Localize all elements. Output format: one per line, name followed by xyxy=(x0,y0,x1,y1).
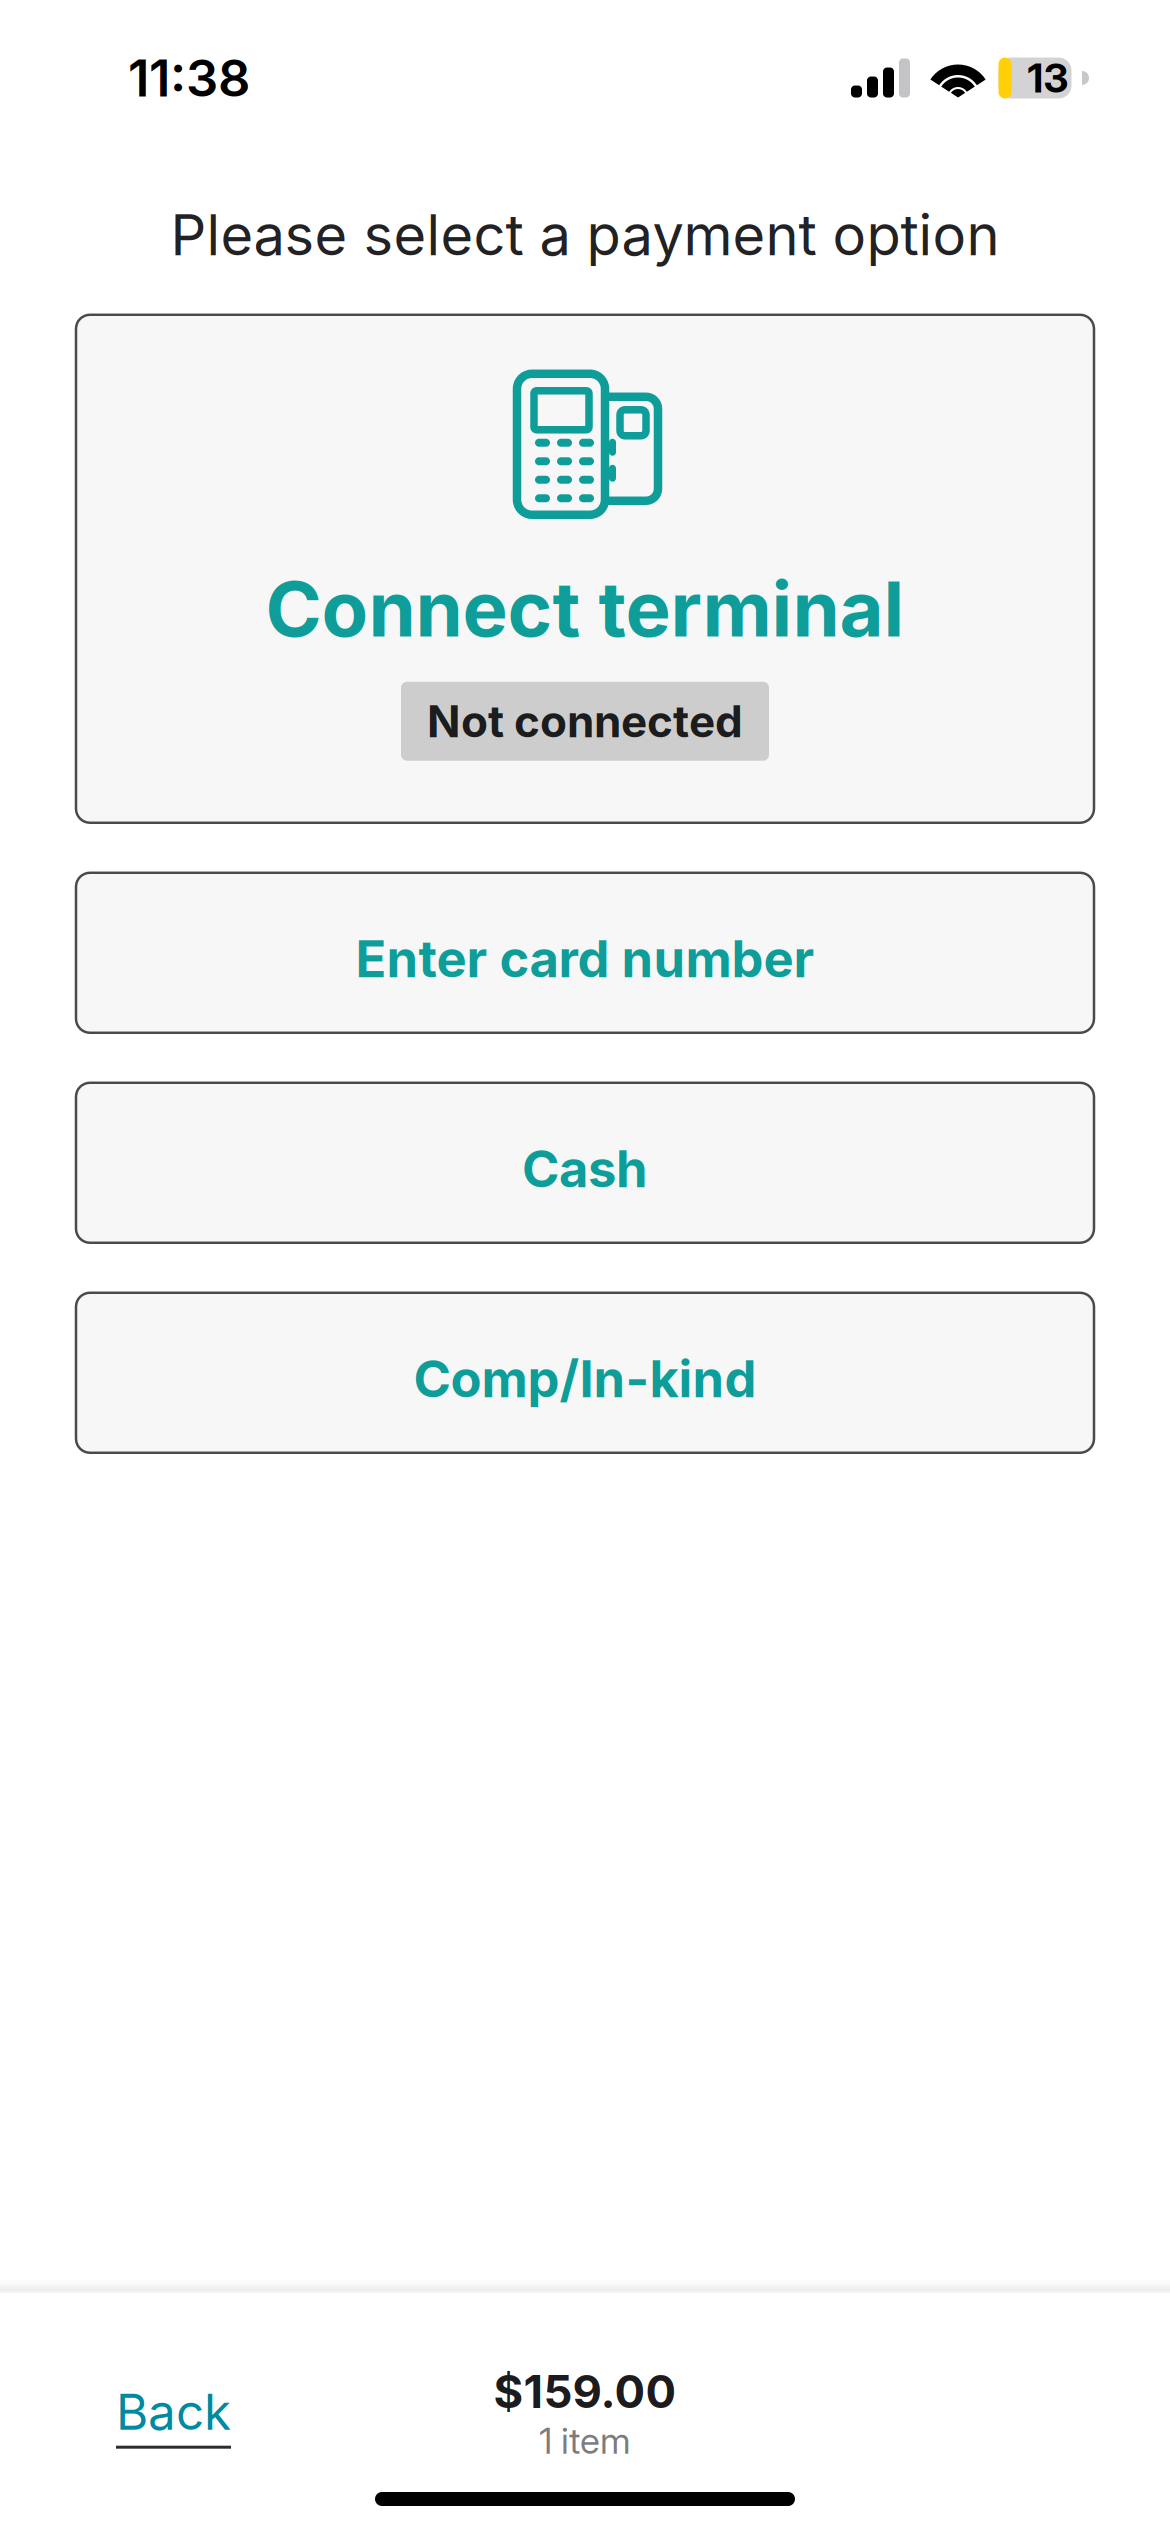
staticText: Cash xyxy=(522,1138,648,1199)
staticText: Back xyxy=(116,2382,231,2442)
staticText: 11:38 xyxy=(128,47,250,109)
staticText: Enter card number xyxy=(355,928,814,989)
staticText: Connect terminal xyxy=(265,563,904,655)
staticText: 13 xyxy=(1027,54,1068,102)
button[interactable]: Connect terminal, not connected xyxy=(76,315,1094,823)
button[interactable]: Comp/In-kind xyxy=(76,1293,1094,1453)
staticText: Comp/In-kind xyxy=(413,1348,756,1409)
button[interactable]: Cash xyxy=(76,1083,1094,1243)
staticText: $159.00 xyxy=(493,2364,676,2419)
staticText: Please select a payment option xyxy=(170,201,999,269)
staticText: 1 item xyxy=(539,2419,631,2462)
button[interactable]: Back xyxy=(0,2293,231,2449)
button[interactable]: Enter card number xyxy=(76,873,1094,1033)
staticText: Not connected xyxy=(427,695,743,748)
